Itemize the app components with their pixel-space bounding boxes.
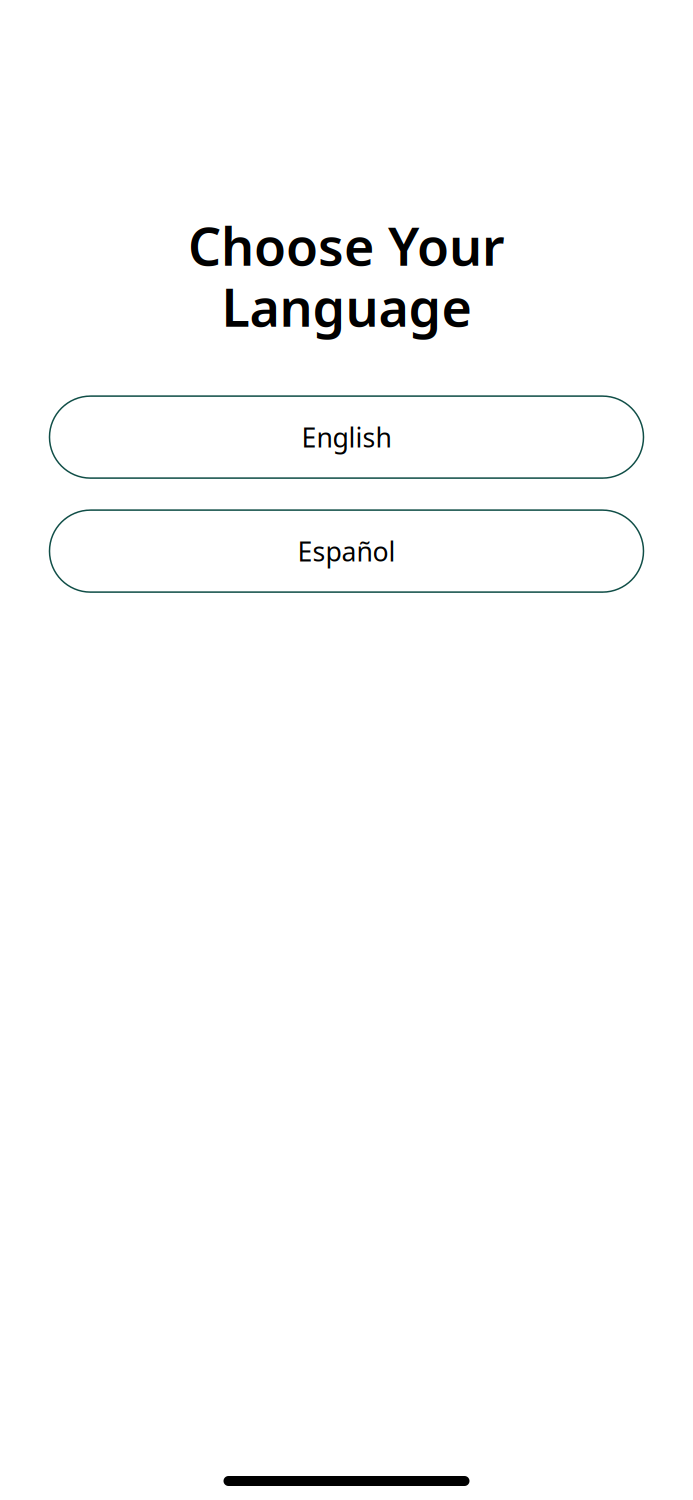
staticText: English	[301, 419, 391, 455]
button[interactable]: Español	[49, 510, 643, 592]
staticText: Language	[221, 272, 471, 341]
staticText: Choose Your	[188, 211, 505, 280]
staticText: Español	[297, 533, 395, 569]
button[interactable]: English	[49, 396, 643, 478]
